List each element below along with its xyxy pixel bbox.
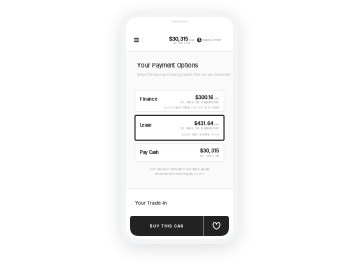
staticText: BUY THIS CAR xyxy=(150,224,184,228)
staticText: $3,000 due at signing, 3.9% APR for 60 m… xyxy=(164,106,219,109)
staticText: $2,500 down, 36 months, 10K/yr xyxy=(182,133,219,136)
button[interactable]: Save to favorites xyxy=(204,216,229,236)
button[interactable]: Menu xyxy=(131,34,142,45)
staticText: $431.64 xyxy=(194,121,213,127)
button[interactable]: Pay Cash xyxy=(135,144,224,162)
staticText: Your Payment Options xyxy=(137,62,198,69)
staticText: Lease xyxy=(140,123,152,128)
staticText: $300.16 xyxy=(195,94,213,100)
staticText: /mo xyxy=(214,123,219,126)
staticText: $30,315 xyxy=(200,148,219,154)
staticText: Select the buying or leasing option that… xyxy=(137,73,233,76)
staticText: incl. taxes & fees, at approved credit xyxy=(180,127,219,130)
staticText: incl. taxes & fees, at approved credit xyxy=(180,101,219,104)
staticText: Your Trade-In xyxy=(135,200,167,206)
button[interactable]: Build and Price xyxy=(197,38,220,42)
button[interactable]: Finance xyxy=(135,90,224,112)
staticText: Build & Price xyxy=(203,38,220,41)
staticText: excl. taxes & fees xyxy=(200,154,219,157)
staticText: Pay Cash xyxy=(140,150,159,155)
staticText: $30,315 xyxy=(169,35,188,42)
staticText: excl. taxes & fees xyxy=(173,42,190,44)
staticText: Don't see one of terms that fit your nee… xyxy=(149,168,209,171)
staticText: We can customize terms designed for you. xyxy=(155,172,204,175)
button[interactable]: BUY THIS CAR xyxy=(130,216,203,236)
staticText: /mo xyxy=(214,97,219,100)
button[interactable]: Lease xyxy=(135,115,224,140)
staticText: MSRP xyxy=(189,39,194,42)
staticText: $ xyxy=(198,38,200,42)
staticText: Finance xyxy=(140,97,158,102)
